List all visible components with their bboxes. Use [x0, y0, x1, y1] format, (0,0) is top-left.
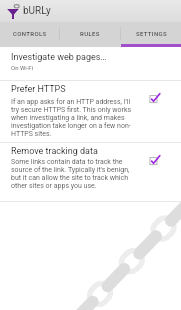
- other: Toggle setting, checked: [149, 154, 161, 166]
- staticText: On Wi-Fi: [11, 64, 34, 71]
- button[interactable]: RULES: [60, 22, 120, 47]
- button[interactable]: Prefer HTTPS: [0, 81, 181, 142]
- other: Toggle setting, checked: [149, 92, 161, 104]
- button[interactable]: Investigate web pages…: [0, 47, 181, 80]
- staticText: Some links contain data to track the sou…: [11, 158, 135, 190]
- staticText: CONTROLS: [13, 30, 47, 37]
- staticText: Investigate web pages…: [11, 52, 107, 63]
- staticText: Prefer HTTPS: [11, 84, 66, 95]
- button[interactable]: CONTROLS: [0, 22, 59, 47]
- staticText: Remove tracking data: [11, 146, 98, 157]
- staticText: If an app asks for an HTTP address, I'll…: [11, 98, 135, 138]
- staticText: RULES: [80, 30, 100, 37]
- button[interactable]: SETTINGS: [121, 22, 181, 47]
- staticText: bURLy: [23, 5, 51, 17]
- staticText: SETTINGS: [136, 30, 167, 37]
- button[interactable]: Remove tracking data: [0, 143, 181, 201]
